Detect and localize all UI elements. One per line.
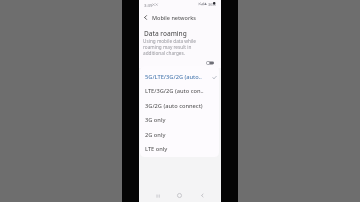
- staticText: 3G only: [145, 116, 166, 124]
- button[interactable]: 2G only: [140, 128, 219, 142]
- button[interactable]: Data roaming switch: [206, 61, 214, 65]
- button[interactable]: LTE only: [140, 142, 219, 156]
- button[interactable]: 3G only: [140, 113, 219, 127]
- staticText: Data roaming: [144, 29, 187, 38]
- staticText: 2G only: [145, 131, 166, 139]
- button[interactable]: LTE/3G/2G (auto con..: [140, 84, 219, 98]
- staticText: 3G/2G (auto connect): [145, 102, 203, 110]
- staticText: LTE only: [145, 145, 168, 153]
- staticText: 36%: [208, 2, 216, 7]
- button[interactable]: 3G/2G (auto connect): [140, 99, 219, 113]
- button[interactable]: Back: [198, 191, 207, 200]
- button[interactable]: Recent apps: [153, 191, 162, 200]
- button[interactable]: Back: [139, 10, 221, 25]
- staticText: 5G/LTE/3G/2G (auto..: [145, 73, 202, 81]
- staticText: Mobile networks: [152, 14, 196, 21]
- staticText: Using mobile data while roaming may resu…: [143, 38, 200, 56]
- button[interactable]: 5G/LTE/3G/2G (auto..: [140, 70, 219, 84]
- staticText: 3:39: [144, 2, 153, 8]
- button[interactable]: Back: [142, 14, 149, 21]
- button[interactable]: Home: [175, 191, 184, 200]
- staticText: LTE/3G/2G (auto con..: [145, 87, 204, 95]
